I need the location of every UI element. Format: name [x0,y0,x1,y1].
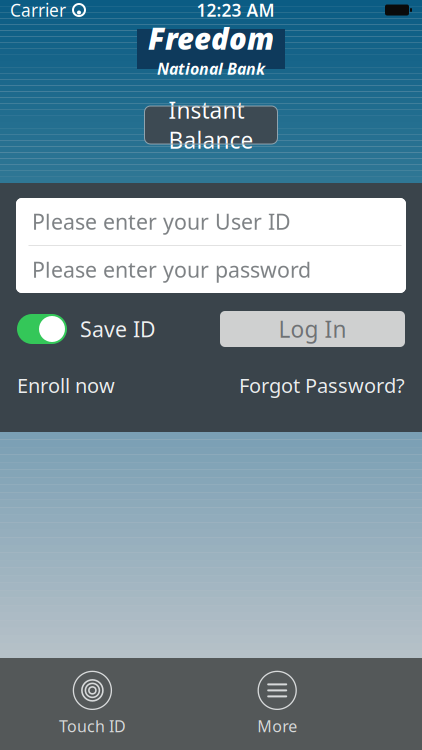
staticText: National Bank [157,58,265,79]
staticText: Please enter your password [32,255,311,284]
staticText: Touch ID [59,715,126,737]
staticText: Enroll now [17,372,115,399]
button[interactable]: Instant Balance [144,106,277,144]
staticText: Save ID [80,315,156,343]
button[interactable]: Forgot Password? [239,372,405,399]
staticText: Forgot Password? [239,372,405,399]
staticText: Log In [278,314,346,344]
button[interactable]: Please enter your User ID [16,198,406,245]
staticText: Carrier [10,0,66,21]
button[interactable]: More [237,671,317,737]
staticText: Instant Balance [168,95,253,155]
button[interactable]: Log In [220,311,405,347]
button[interactable]: Save ID [17,314,156,344]
button[interactable]: Please enter your password [16,246,406,293]
staticText: Freedom [148,19,274,58]
button[interactable]: Enroll now [17,372,115,399]
staticText: 12:23 AM [196,0,274,21]
staticText: Please enter your User ID [32,207,291,236]
staticText: More [257,715,297,737]
button[interactable]: Touch ID [52,671,132,737]
